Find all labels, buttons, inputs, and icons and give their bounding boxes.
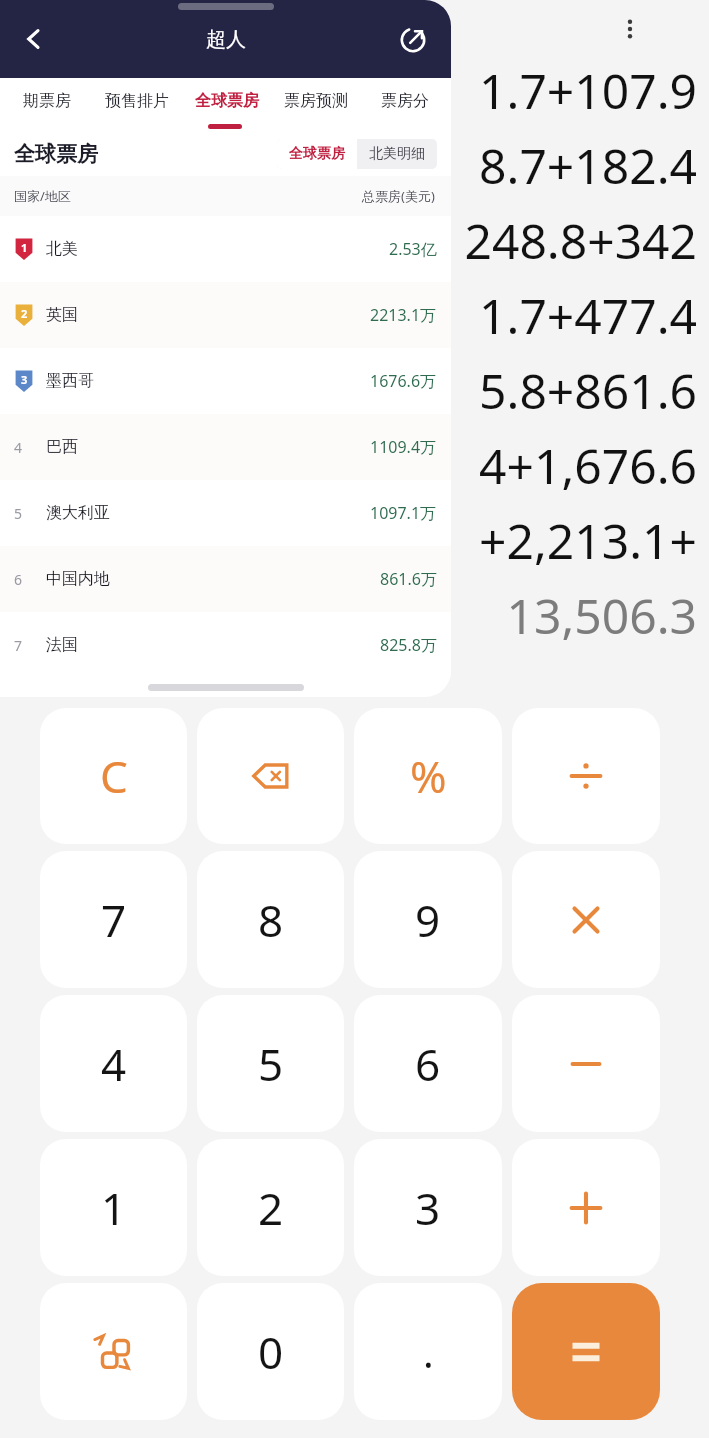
staticText: 北美 [46, 239, 78, 259]
button[interactable]: 期票房 [2, 78, 92, 124]
staticText: 6 [14, 570, 23, 589]
button[interactable]: More options [607, 6, 653, 52]
staticText: 1097.1万 [370, 502, 437, 524]
button[interactable]: 预售排片 [92, 78, 182, 124]
staticText: 2213.1万 [370, 304, 437, 326]
staticText: 1.7+107.9 [479, 58, 697, 123]
staticText: 4+1,676.6 [479, 433, 697, 498]
staticText: 4 [14, 438, 23, 457]
staticText: 2 [21, 306, 28, 321]
staticText: 1.7+477.4 [479, 283, 697, 348]
button[interactable]: Divide [512, 708, 660, 844]
staticText: 2 [258, 1178, 284, 1238]
button[interactable]: 7 [40, 851, 187, 988]
staticText: 中国内地 [46, 569, 110, 589]
staticText: 墨西哥 [46, 371, 94, 391]
button[interactable]: % [354, 708, 502, 844]
button[interactable]: C [40, 708, 187, 844]
button[interactable]: 5 [0, 480, 451, 546]
staticText: 861.6万 [380, 568, 437, 590]
staticText: 1 [21, 240, 28, 255]
staticText: 全球票房 [289, 145, 345, 163]
button[interactable]: Equals [512, 1283, 660, 1420]
staticText: 13,506.3 [506, 583, 697, 648]
staticText: +2,213.1+ [479, 508, 697, 573]
staticText: 预售排片 [105, 91, 169, 111]
staticText: 7 [14, 636, 23, 655]
staticText: C [100, 746, 128, 806]
button[interactable]: 1 [40, 1139, 187, 1276]
button[interactable]: 全球票房 [277, 139, 357, 169]
staticText: 8 [258, 890, 284, 950]
staticText: . [423, 1325, 434, 1379]
button[interactable]: Add [512, 1139, 660, 1276]
button[interactable]: 2 [0, 282, 451, 348]
staticText: 1 [101, 1178, 127, 1238]
staticText: 6 [415, 1034, 441, 1094]
staticText: 3 [415, 1178, 441, 1238]
staticText: 5 [14, 504, 23, 523]
button[interactable]: 3 [354, 1139, 502, 1276]
button[interactable]: 票房分 [360, 78, 449, 124]
staticText: 票房预测 [284, 91, 348, 111]
button[interactable]: Backspace [197, 708, 344, 844]
button[interactable]: 5 [197, 995, 344, 1132]
button[interactable]: Back [8, 13, 60, 65]
staticText: 8.7+182.4 [479, 133, 697, 198]
staticText: 总票房(美元) [362, 187, 435, 205]
button[interactable]: Unit converter [40, 1283, 187, 1420]
staticText: 期票房 [23, 91, 71, 111]
button[interactable]: 6 [0, 546, 451, 612]
button[interactable]: 全球票房 [182, 78, 271, 124]
staticText: 巴西 [46, 437, 78, 457]
button[interactable]: 3 [0, 348, 451, 414]
staticText: 北美明细 [369, 145, 425, 163]
staticText: 7 [101, 890, 127, 950]
staticText: 5 [258, 1034, 284, 1094]
button[interactable]: 票房预测 [271, 78, 360, 124]
staticText: 248.8+342 [464, 208, 697, 273]
button[interactable]: 1 [0, 216, 451, 282]
button[interactable]: 4 [40, 995, 187, 1132]
button[interactable]: 8 [197, 851, 344, 988]
button[interactable]: Subtract [512, 995, 660, 1132]
staticText: 1676.6万 [370, 370, 437, 392]
button[interactable]: Share [387, 13, 439, 65]
staticText: 825.8万 [380, 634, 437, 656]
staticText: 全球票房 [14, 141, 98, 167]
button[interactable]: 6 [354, 995, 502, 1132]
button[interactable]: 北美明细 [357, 139, 437, 169]
staticText: 0 [258, 1322, 284, 1382]
button[interactable]: 4 [0, 414, 451, 480]
staticText: 国家/地区 [14, 187, 71, 205]
staticText: 2.53亿 [389, 238, 437, 260]
staticText: 票房分 [381, 91, 429, 111]
staticText: 法国 [46, 635, 78, 655]
button[interactable]: 2 [197, 1139, 344, 1276]
staticText: 英国 [46, 305, 78, 325]
button[interactable]: 9 [354, 851, 502, 988]
staticText: 4 [101, 1034, 127, 1094]
staticText: 3 [21, 372, 28, 387]
staticText: % [410, 746, 447, 806]
staticText: 5.8+861.6 [479, 358, 697, 423]
staticText: 澳大利亚 [46, 503, 110, 523]
button[interactable]: 7 [0, 612, 451, 678]
staticText: 超人 [206, 27, 246, 52]
button[interactable]: 0 [197, 1283, 344, 1420]
staticText: 1109.4万 [370, 436, 437, 458]
button[interactable]: Multiply [512, 851, 660, 988]
staticText: 9 [415, 890, 441, 950]
button[interactable]: . [354, 1283, 502, 1420]
staticText: 全球票房 [195, 91, 259, 111]
